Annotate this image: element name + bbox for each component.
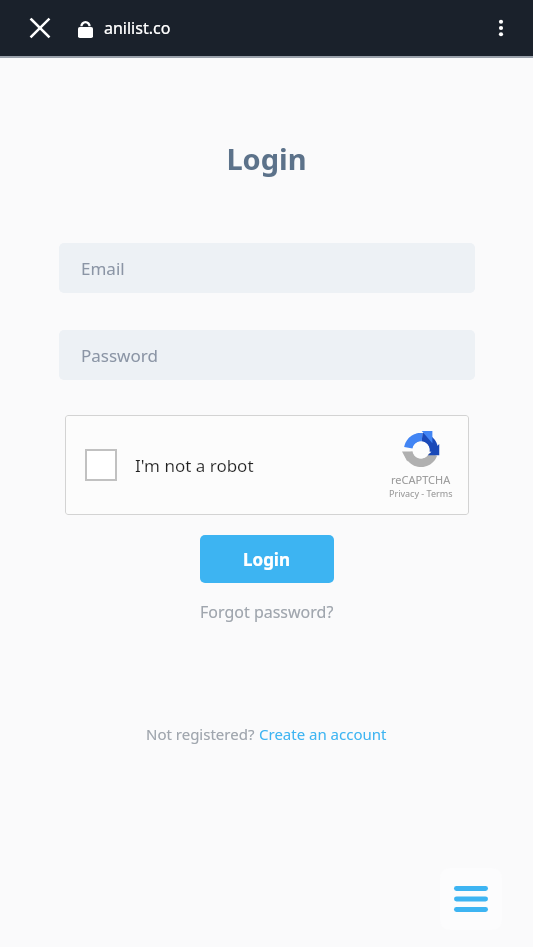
staticText: Not registered? <box>146 724 259 744</box>
button[interactable]: Menu <box>440 868 502 930</box>
staticText: Login <box>243 548 291 571</box>
button[interactable]: Forgot password? <box>194 597 340 627</box>
staticText: anilist.co <box>104 17 171 39</box>
staticText: Login <box>0 139 533 178</box>
staticText: Create an account <box>259 724 387 744</box>
staticText: Privacy - Terms <box>389 487 453 499</box>
staticText: Password <box>81 344 158 367</box>
button[interactable]: Create an account <box>259 724 387 744</box>
button[interactable]: Close <box>18 6 62 50</box>
button[interactable]: Login <box>200 535 334 583</box>
staticText: Forgot password? <box>200 601 334 623</box>
button[interactable]: Password <box>59 330 475 380</box>
button[interactable]: Email <box>59 243 475 293</box>
staticText: I'm not a robot <box>135 454 254 477</box>
staticText: reCAPTCHA <box>391 472 451 487</box>
button[interactable]: I'm not a robot checkbox <box>85 449 117 481</box>
button[interactable]: More options <box>479 6 523 50</box>
staticText: Email <box>81 257 125 280</box>
